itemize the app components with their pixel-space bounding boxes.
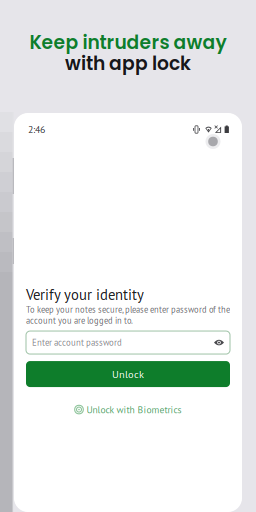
- staticText: with app lock: [65, 50, 191, 76]
- staticText: Verify your identity: [26, 285, 144, 304]
- staticText: Unlock with Biometrics: [86, 403, 181, 416]
- staticText: To keep your notes secure, please enter …: [26, 304, 230, 326]
- button[interactable]: Unlock: [26, 361, 230, 387]
- staticText: Keep intruders away: [29, 29, 226, 55]
- button[interactable]: Unlock with Biometrics: [26, 401, 230, 418]
- staticText: Enter account password: [32, 337, 122, 348]
- staticText: Unlock: [112, 367, 144, 381]
- staticText: 2:46: [28, 123, 45, 136]
